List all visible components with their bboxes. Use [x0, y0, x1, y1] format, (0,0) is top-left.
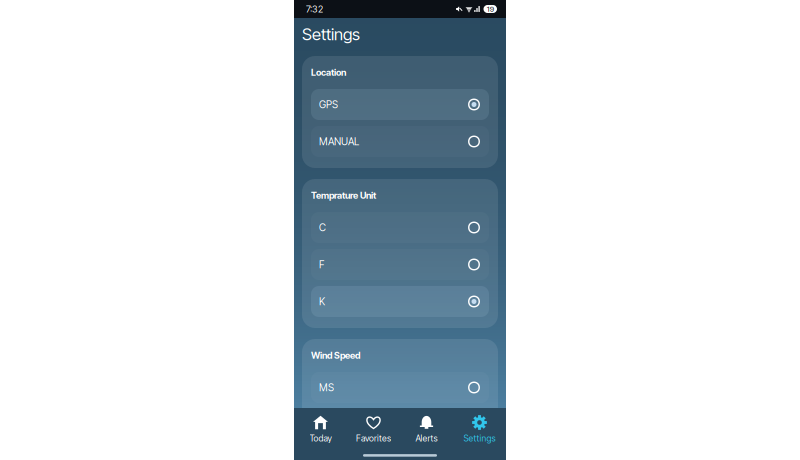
button[interactable]: Settings — [453, 415, 506, 443]
staticText: MS — [319, 381, 334, 394]
button[interactable]: F — [311, 249, 489, 280]
staticText: Temprature Unit — [311, 190, 376, 201]
staticText: GPS — [319, 98, 338, 111]
button[interactable]: Alerts — [400, 415, 453, 443]
staticText: 7:32 — [306, 3, 323, 15]
button[interactable]: C — [311, 212, 489, 243]
staticText: F — [319, 258, 324, 271]
staticText: Favorites — [356, 433, 391, 443]
staticText: 19 — [487, 4, 494, 14]
button[interactable]: Today — [294, 415, 347, 443]
staticText: KMH — [319, 418, 341, 431]
button[interactable]: MS — [311, 372, 489, 403]
staticText: Alerts — [415, 433, 437, 443]
button[interactable]: K — [311, 286, 489, 317]
button[interactable]: KMH — [311, 409, 489, 440]
staticText: Settings — [302, 24, 360, 44]
staticText: Wind Speed — [311, 350, 360, 361]
staticText: Settings — [463, 433, 495, 443]
staticText: MANUAL — [319, 135, 359, 148]
button[interactable]: MANUAL — [311, 126, 489, 157]
staticText: C — [319, 221, 326, 234]
staticText: Today — [309, 433, 331, 443]
button[interactable]: GPS — [311, 89, 489, 120]
staticText: Location — [311, 67, 346, 78]
button[interactable]: Favorites — [347, 415, 400, 443]
staticText: K — [319, 295, 325, 308]
